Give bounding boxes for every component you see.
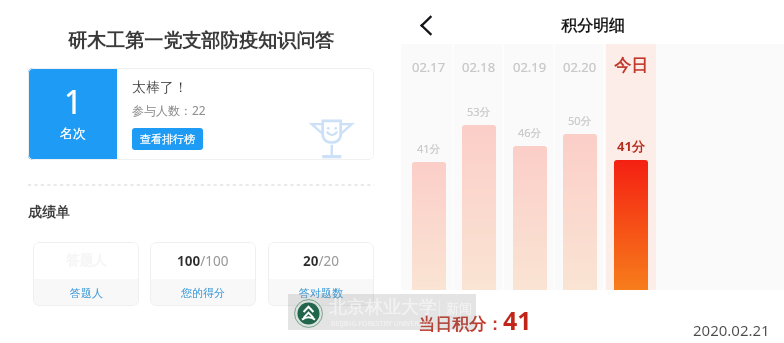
staticText: 积分明细 bbox=[561, 16, 625, 36]
button[interactable]: 查看排行榜 bbox=[132, 128, 203, 150]
staticText: 您的得分 bbox=[181, 286, 225, 300]
staticText: 50分 bbox=[568, 113, 592, 128]
staticText: 名次 bbox=[60, 125, 86, 141]
staticText: 02.19 bbox=[513, 58, 547, 76]
staticText: 今日 bbox=[614, 55, 648, 76]
button[interactable]: 100/100 bbox=[150, 242, 256, 306]
staticText: 北京林业大学 bbox=[329, 296, 437, 319]
button[interactable]: 答题人 bbox=[33, 242, 139, 306]
staticText: 20/20 bbox=[303, 252, 339, 270]
button[interactable]: 1 bbox=[28, 68, 374, 160]
staticText: 答对题数 bbox=[299, 286, 343, 300]
button[interactable]: 02.19 bbox=[505, 44, 555, 290]
button[interactable]: 20/20 bbox=[268, 242, 374, 306]
staticText: 参与人数：22 bbox=[132, 102, 206, 118]
staticText: 查看排行榜 bbox=[140, 132, 195, 146]
staticText: 02.20 bbox=[563, 58, 597, 76]
button[interactable]: Back bbox=[410, 9, 442, 41]
button[interactable]: 02.20 bbox=[555, 44, 605, 290]
staticText: 02.17 bbox=[412, 58, 446, 76]
staticText: 答题人 bbox=[66, 252, 107, 269]
button[interactable]: 02.17 bbox=[404, 44, 454, 290]
staticText: 1 bbox=[64, 80, 83, 124]
staticText: BEIJING FORESTRY UNIVERSITY bbox=[331, 319, 433, 329]
staticText: 46分 bbox=[518, 125, 542, 140]
staticText: 新闻 bbox=[446, 300, 472, 316]
staticText: 当日积分：41 bbox=[418, 303, 532, 337]
staticText: 研木工第一党支部防疫知识问答 bbox=[68, 29, 334, 53]
staticText: 41分 bbox=[417, 141, 441, 156]
staticText: 答题人 bbox=[70, 286, 103, 300]
button[interactable]: 今日 bbox=[606, 44, 656, 290]
staticText: 41分 bbox=[617, 137, 645, 155]
staticText: 太棒了！ bbox=[132, 79, 188, 97]
staticText: 100/100 bbox=[177, 252, 229, 270]
staticText: 2020.02.21 bbox=[693, 320, 770, 340]
staticText: 53分 bbox=[467, 104, 491, 119]
button[interactable]: 02.18 bbox=[454, 44, 504, 290]
staticText: 02.18 bbox=[462, 58, 496, 76]
staticText: 成绩单 bbox=[28, 204, 70, 222]
